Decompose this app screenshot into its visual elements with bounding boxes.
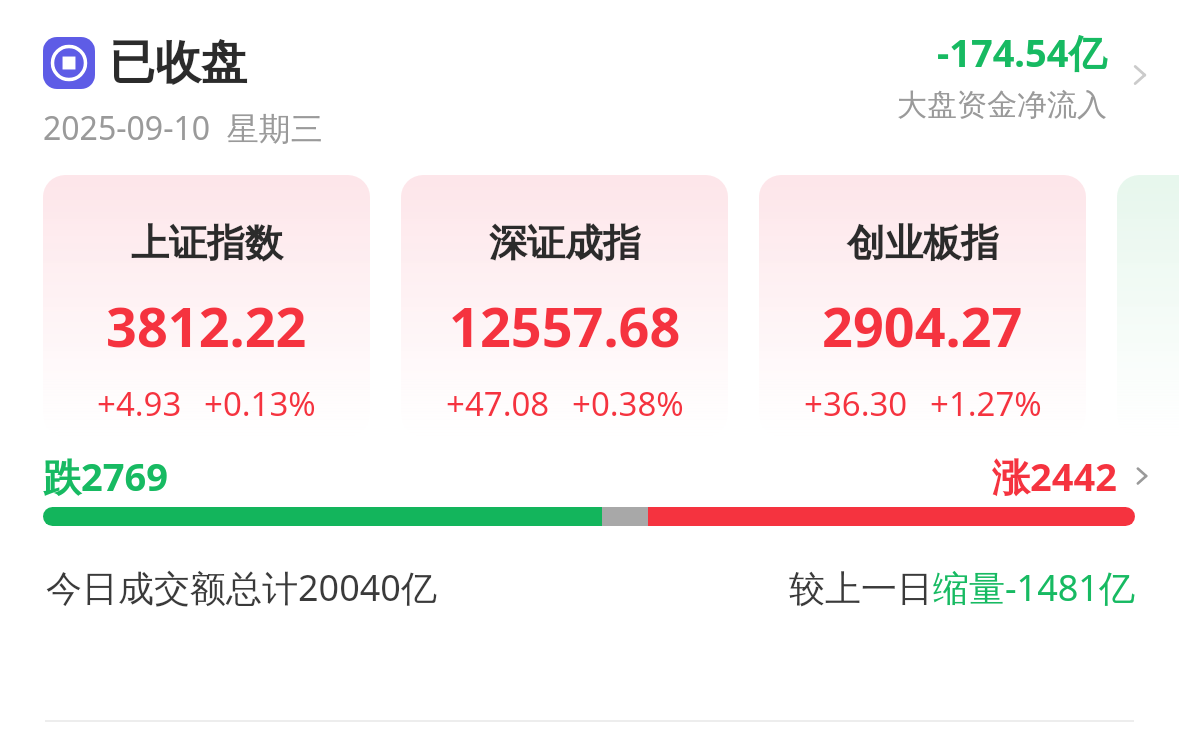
staticText: 12557.68 — [449, 289, 681, 363]
staticText: 创业板指 — [847, 219, 999, 267]
staticText: +4.93 — [97, 381, 182, 426]
button[interactable]: 已收盘 — [43, 37, 95, 89]
button[interactable]: 深证成指 — [401, 175, 728, 437]
staticText: 深证成指 — [489, 219, 641, 267]
other: 大盘资金净流入详情 — [1123, 58, 1157, 92]
staticText: 较上一日缩量-1481亿 — [789, 563, 1135, 612]
staticText: 大盘资金净流入 — [897, 86, 1107, 124]
staticText: 2904.27 — [822, 289, 1023, 363]
staticText: -174.54亿 — [937, 26, 1107, 78]
staticText: +36.30 — [804, 381, 908, 426]
staticText: +1.27% — [930, 381, 1042, 426]
button[interactable]: 上证指数 — [43, 175, 370, 437]
staticText: 跌2769 — [43, 450, 168, 502]
button[interactable]: 涨2442 — [992, 450, 1157, 502]
staticText: +0.38% — [572, 381, 684, 426]
button[interactable] — [43, 507, 1135, 526]
staticText: 今日成交额总计20040亿 — [46, 563, 437, 612]
other: 涨跌详情 — [1127, 461, 1157, 491]
staticText: 已收盘 — [109, 34, 247, 92]
staticText: 涨2442 — [992, 450, 1117, 502]
staticText: 上证指数 — [131, 219, 283, 267]
staticText: 3812.22 — [106, 289, 307, 363]
staticText: 2025-09-10 星期三 — [43, 106, 323, 150]
staticText: +47.08 — [446, 381, 550, 426]
button[interactable]: 创业板指 — [759, 175, 1086, 437]
button[interactable] — [1117, 175, 1179, 437]
button[interactable]: -174.54亿 — [897, 26, 1157, 124]
staticText: +0.13% — [204, 381, 316, 426]
